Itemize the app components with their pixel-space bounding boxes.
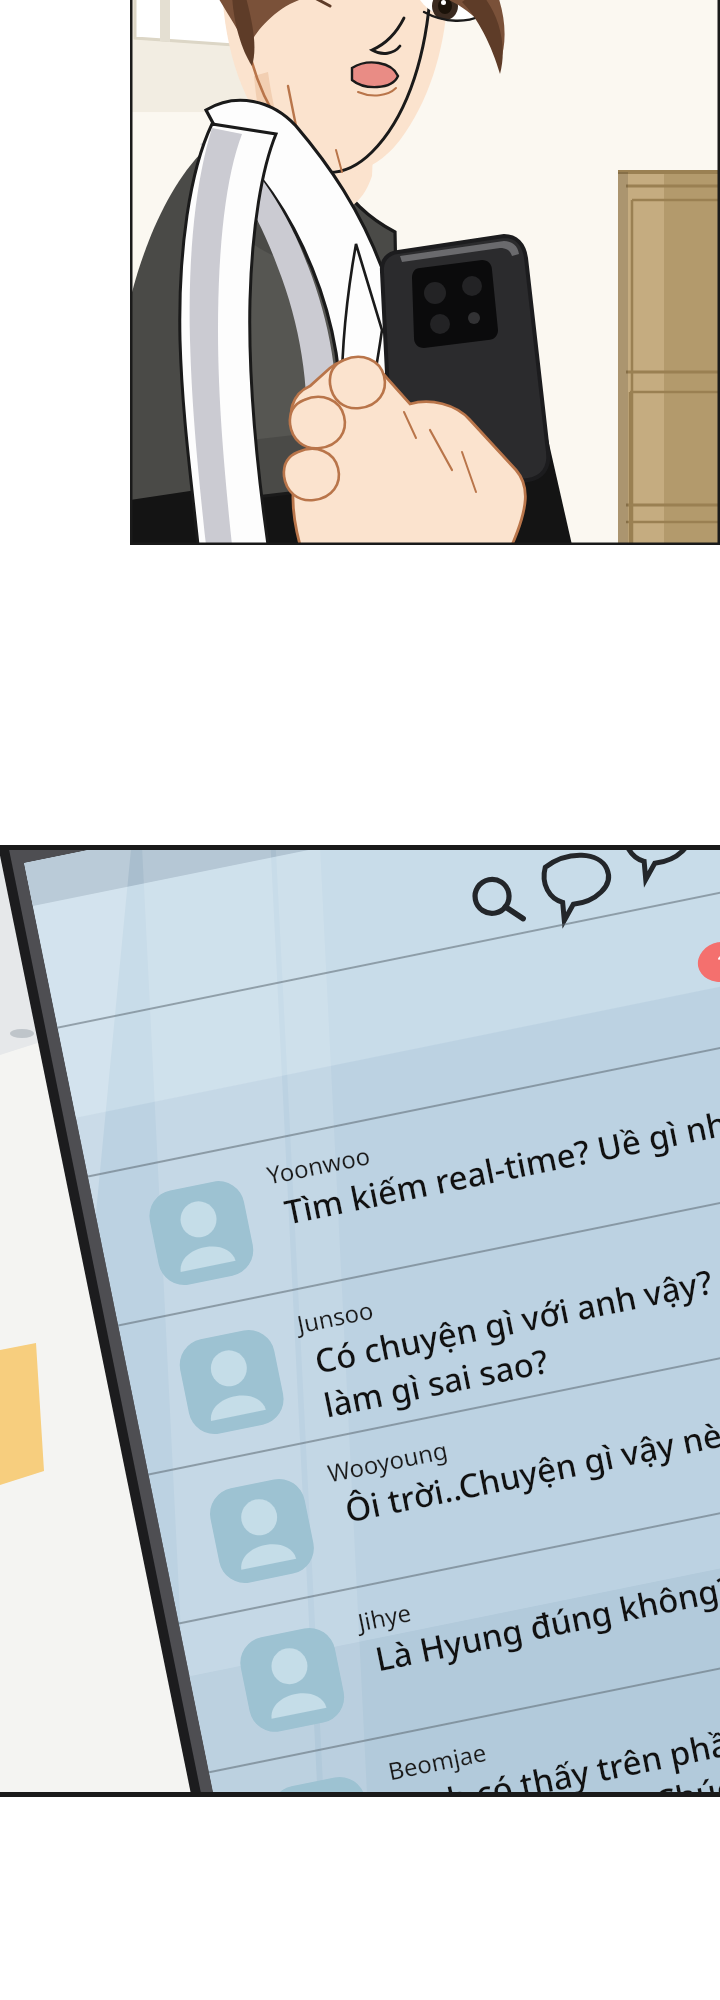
button[interactable]: Webtoon episode page	[0, 0, 720, 2000]
